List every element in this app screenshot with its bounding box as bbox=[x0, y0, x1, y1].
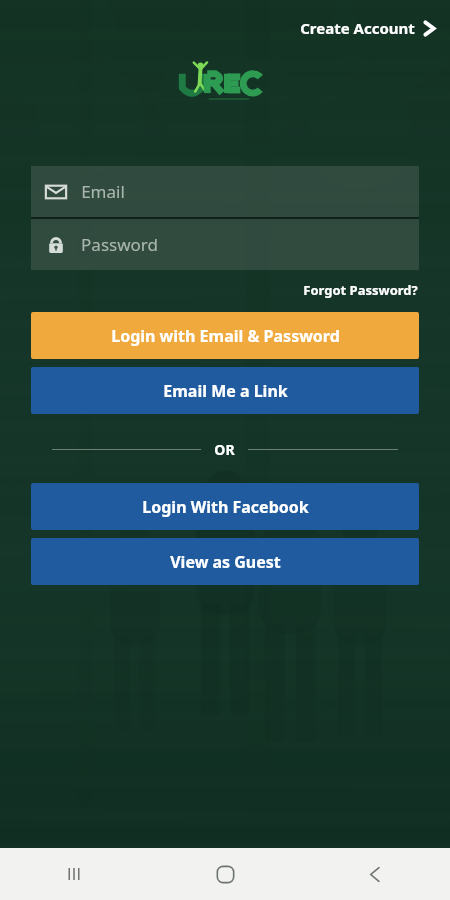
button[interactable]: Forgot Password? bbox=[299, 278, 422, 302]
staticText: Email Me a Link bbox=[163, 380, 288, 402]
button[interactable]: Email bbox=[31, 166, 419, 217]
button[interactable]: Login With Facebook bbox=[31, 483, 419, 530]
staticText: Password bbox=[81, 233, 158, 256]
button[interactable]: Email Me a Link bbox=[31, 367, 419, 414]
button[interactable]: Recent apps bbox=[0, 848, 150, 900]
staticText: Login With Facebook bbox=[142, 496, 309, 518]
button[interactable]: Back bbox=[300, 848, 450, 900]
staticText: Login with Email & Password bbox=[111, 325, 340, 347]
staticText: Forgot Password? bbox=[303, 281, 418, 299]
staticText: OR bbox=[214, 440, 235, 459]
button[interactable]: Login with Email & Password bbox=[31, 312, 419, 359]
button[interactable]: View as Guest bbox=[31, 538, 419, 585]
button[interactable]: Password bbox=[31, 219, 419, 270]
staticText: Create Account bbox=[300, 18, 415, 38]
button[interactable]: Create Account bbox=[286, 12, 450, 44]
staticText: View as Guest bbox=[170, 551, 281, 573]
staticText: Email bbox=[81, 180, 125, 203]
button[interactable]: Home bbox=[150, 848, 300, 900]
